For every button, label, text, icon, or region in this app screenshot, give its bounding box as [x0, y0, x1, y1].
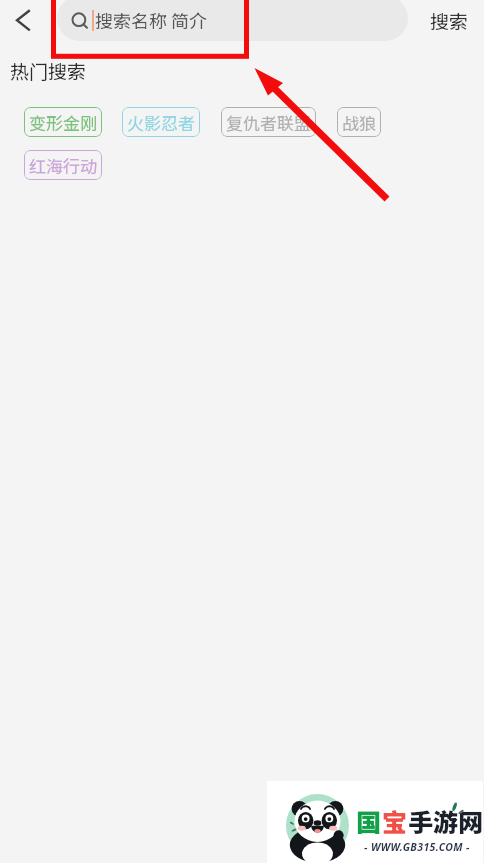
staticText: 手游网	[408, 803, 484, 839]
staticText: 战狼	[342, 110, 376, 135]
staticText: 国	[356, 803, 382, 839]
staticText: 热门搜索	[10, 57, 87, 85]
button[interactable]: 复仇者联盟	[221, 107, 316, 137]
staticText: 火影忍者	[127, 110, 195, 135]
button[interactable]: Back	[0, 0, 46, 42]
staticText: 红海行动	[29, 153, 97, 178]
staticText: 复仇者联盟	[226, 110, 311, 135]
button[interactable]: 搜索名称 简介	[57, 0, 408, 41]
staticText: 搜索名称 简介	[95, 7, 208, 33]
staticText: - WWW.GB315.COM -	[364, 840, 470, 854]
staticText: 宝	[382, 803, 408, 839]
button[interactable]: 火影忍者	[122, 107, 200, 137]
button[interactable]: 红海行动	[24, 150, 102, 180]
staticText: 变形金刚	[29, 110, 97, 135]
button[interactable]: 战狼	[337, 107, 381, 137]
staticText: 搜索	[430, 7, 469, 35]
button[interactable]: 搜索	[422, 0, 477, 43]
button[interactable]: 变形金刚	[24, 107, 102, 137]
